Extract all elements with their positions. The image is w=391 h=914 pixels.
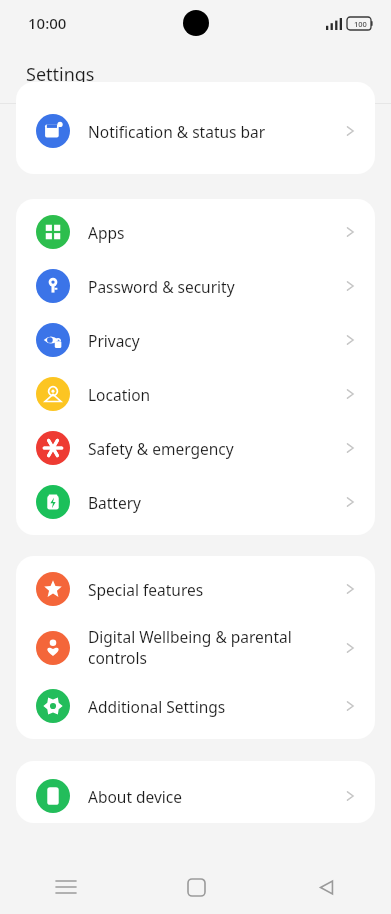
staticText: About device bbox=[88, 786, 335, 807]
staticText: Password & security bbox=[88, 276, 335, 297]
button[interactable]: Back bbox=[261, 860, 391, 914]
button[interactable]: Battery bbox=[16, 475, 375, 529]
staticText: Apps bbox=[88, 222, 335, 243]
button[interactable]: Notification & status bar bbox=[16, 104, 375, 158]
staticText: Special features bbox=[88, 579, 335, 600]
staticText: Battery bbox=[88, 492, 335, 513]
button[interactable]: Apps bbox=[16, 205, 375, 259]
staticText: Safety & emergency bbox=[88, 438, 335, 459]
staticText: Settings bbox=[26, 62, 95, 87]
staticText: Additional Settings bbox=[88, 696, 335, 717]
button[interactable]: Recent apps bbox=[0, 860, 131, 914]
button[interactable]: Digital Wellbeing & parental controls bbox=[16, 616, 375, 679]
button[interactable]: Location bbox=[16, 367, 375, 421]
button[interactable]: Safety & emergency bbox=[16, 421, 375, 475]
staticText: Notification & status bar bbox=[88, 121, 335, 142]
staticText: Privacy bbox=[88, 330, 335, 351]
button[interactable]: Additional Settings bbox=[16, 679, 375, 733]
staticText: Digital Wellbeing & parental controls bbox=[88, 626, 335, 669]
staticText: Location bbox=[88, 384, 335, 405]
button[interactable]: Privacy bbox=[16, 313, 375, 367]
button[interactable]: Special features bbox=[16, 562, 375, 616]
button[interactable]: Password & security bbox=[16, 259, 375, 313]
button[interactable]: About device bbox=[16, 769, 375, 823]
button[interactable]: Home bbox=[131, 860, 261, 914]
staticText: 10:00 bbox=[28, 13, 67, 33]
staticText: 100 bbox=[354, 19, 367, 29]
